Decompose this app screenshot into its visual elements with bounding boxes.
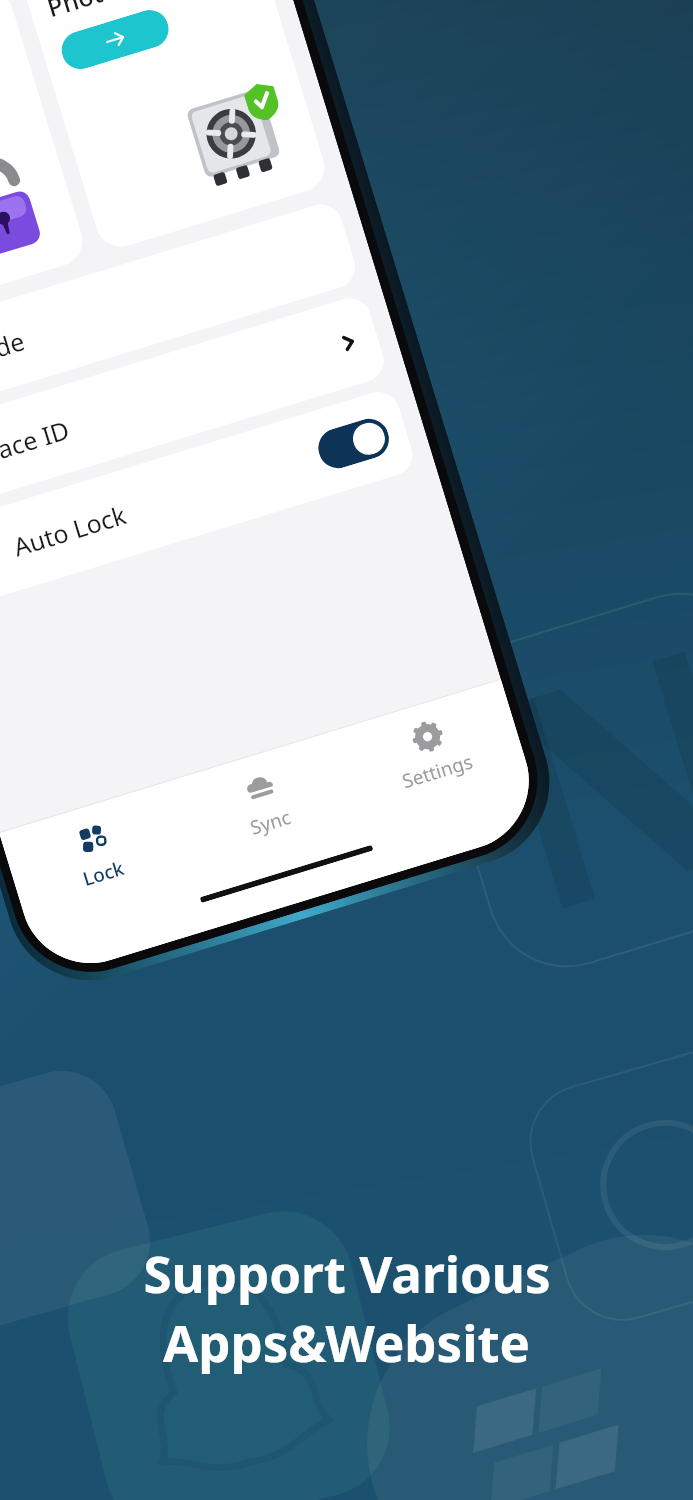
button[interactable]: Settings bbox=[334, 680, 525, 809]
staticText: Sync bbox=[247, 804, 294, 841]
button[interactable]: Auto lock bbox=[0, 387, 418, 612]
button[interactable]: Photo Vault bbox=[20, 0, 331, 253]
staticText: Support Various bbox=[143, 1238, 551, 1307]
button[interactable]: Face ID bbox=[0, 293, 389, 518]
staticText: Guide bbox=[0, 323, 29, 376]
button[interactable]: Open Photo Vault bbox=[57, 5, 173, 74]
other: Lock bbox=[72, 818, 114, 860]
button[interactable]: Passwords bbox=[0, 0, 89, 327]
other: Sync bbox=[239, 767, 281, 809]
staticText: Apps&Website bbox=[163, 1307, 530, 1376]
button[interactable]: Guide bbox=[0, 199, 361, 424]
button[interactable]: Lock bbox=[0, 782, 190, 912]
staticText: Photo Vault bbox=[43, 0, 186, 24]
staticText: Auto Lock bbox=[9, 497, 130, 563]
button[interactable]: Sync bbox=[166, 731, 358, 860]
staticText: Settings bbox=[399, 748, 476, 794]
staticText: Lock bbox=[79, 855, 127, 892]
staticText: Face ID bbox=[0, 412, 74, 470]
button[interactable]: Toggle bbox=[313, 414, 394, 473]
other: Settings bbox=[406, 715, 449, 758]
